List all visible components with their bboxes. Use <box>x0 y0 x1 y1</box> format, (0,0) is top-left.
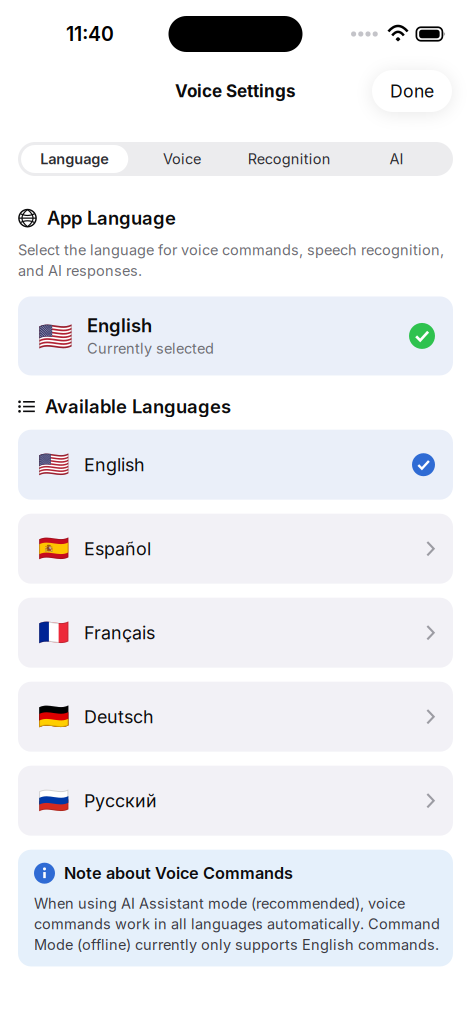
button[interactable]: 🇪🇸 <box>18 514 453 584</box>
staticText: English <box>87 314 152 337</box>
staticText: Note about Voice Commands <box>64 863 293 883</box>
staticText: When using AI Assistant mode (recommende… <box>34 895 440 953</box>
staticText: 🇩🇪 <box>38 702 70 732</box>
staticText: 11:40 <box>66 22 114 46</box>
staticText: 🇫🇷 <box>38 618 70 648</box>
staticText: Español <box>84 538 151 559</box>
staticText: Voice Settings <box>175 81 296 101</box>
staticText: Select the language for voice commands, … <box>18 241 444 279</box>
staticText: Currently selected <box>87 340 214 357</box>
staticText: Language <box>40 150 109 168</box>
button[interactable]: 🇷🇺 <box>18 766 453 836</box>
staticText: Voice <box>163 150 201 168</box>
staticText: Русский <box>84 790 157 811</box>
button[interactable]: Done <box>372 70 452 112</box>
button[interactable]: 🇫🇷 <box>18 598 453 668</box>
staticText: 🇷🇺 <box>38 786 70 816</box>
staticText: Français <box>84 622 155 643</box>
staticText: Available Languages <box>45 395 231 418</box>
staticText: 🇺🇸 <box>38 450 70 480</box>
staticText: Deutsch <box>84 706 154 727</box>
button[interactable]: Language <box>21 145 128 173</box>
button[interactable]: 🇺🇸 <box>18 430 453 500</box>
staticText: App Language <box>47 207 176 229</box>
button[interactable]: Recognition <box>235 145 343 173</box>
staticText: Done <box>390 80 434 102</box>
button[interactable]: Voice <box>128 145 235 173</box>
button[interactable]: AI <box>343 145 450 173</box>
staticText: AI <box>389 150 403 168</box>
staticText: 🇪🇸 <box>38 534 70 564</box>
staticText: English <box>84 454 145 475</box>
staticText: Recognition <box>248 150 331 168</box>
staticText: 🇺🇸 <box>38 319 73 352</box>
button[interactable]: 🇩🇪 <box>18 682 453 752</box>
